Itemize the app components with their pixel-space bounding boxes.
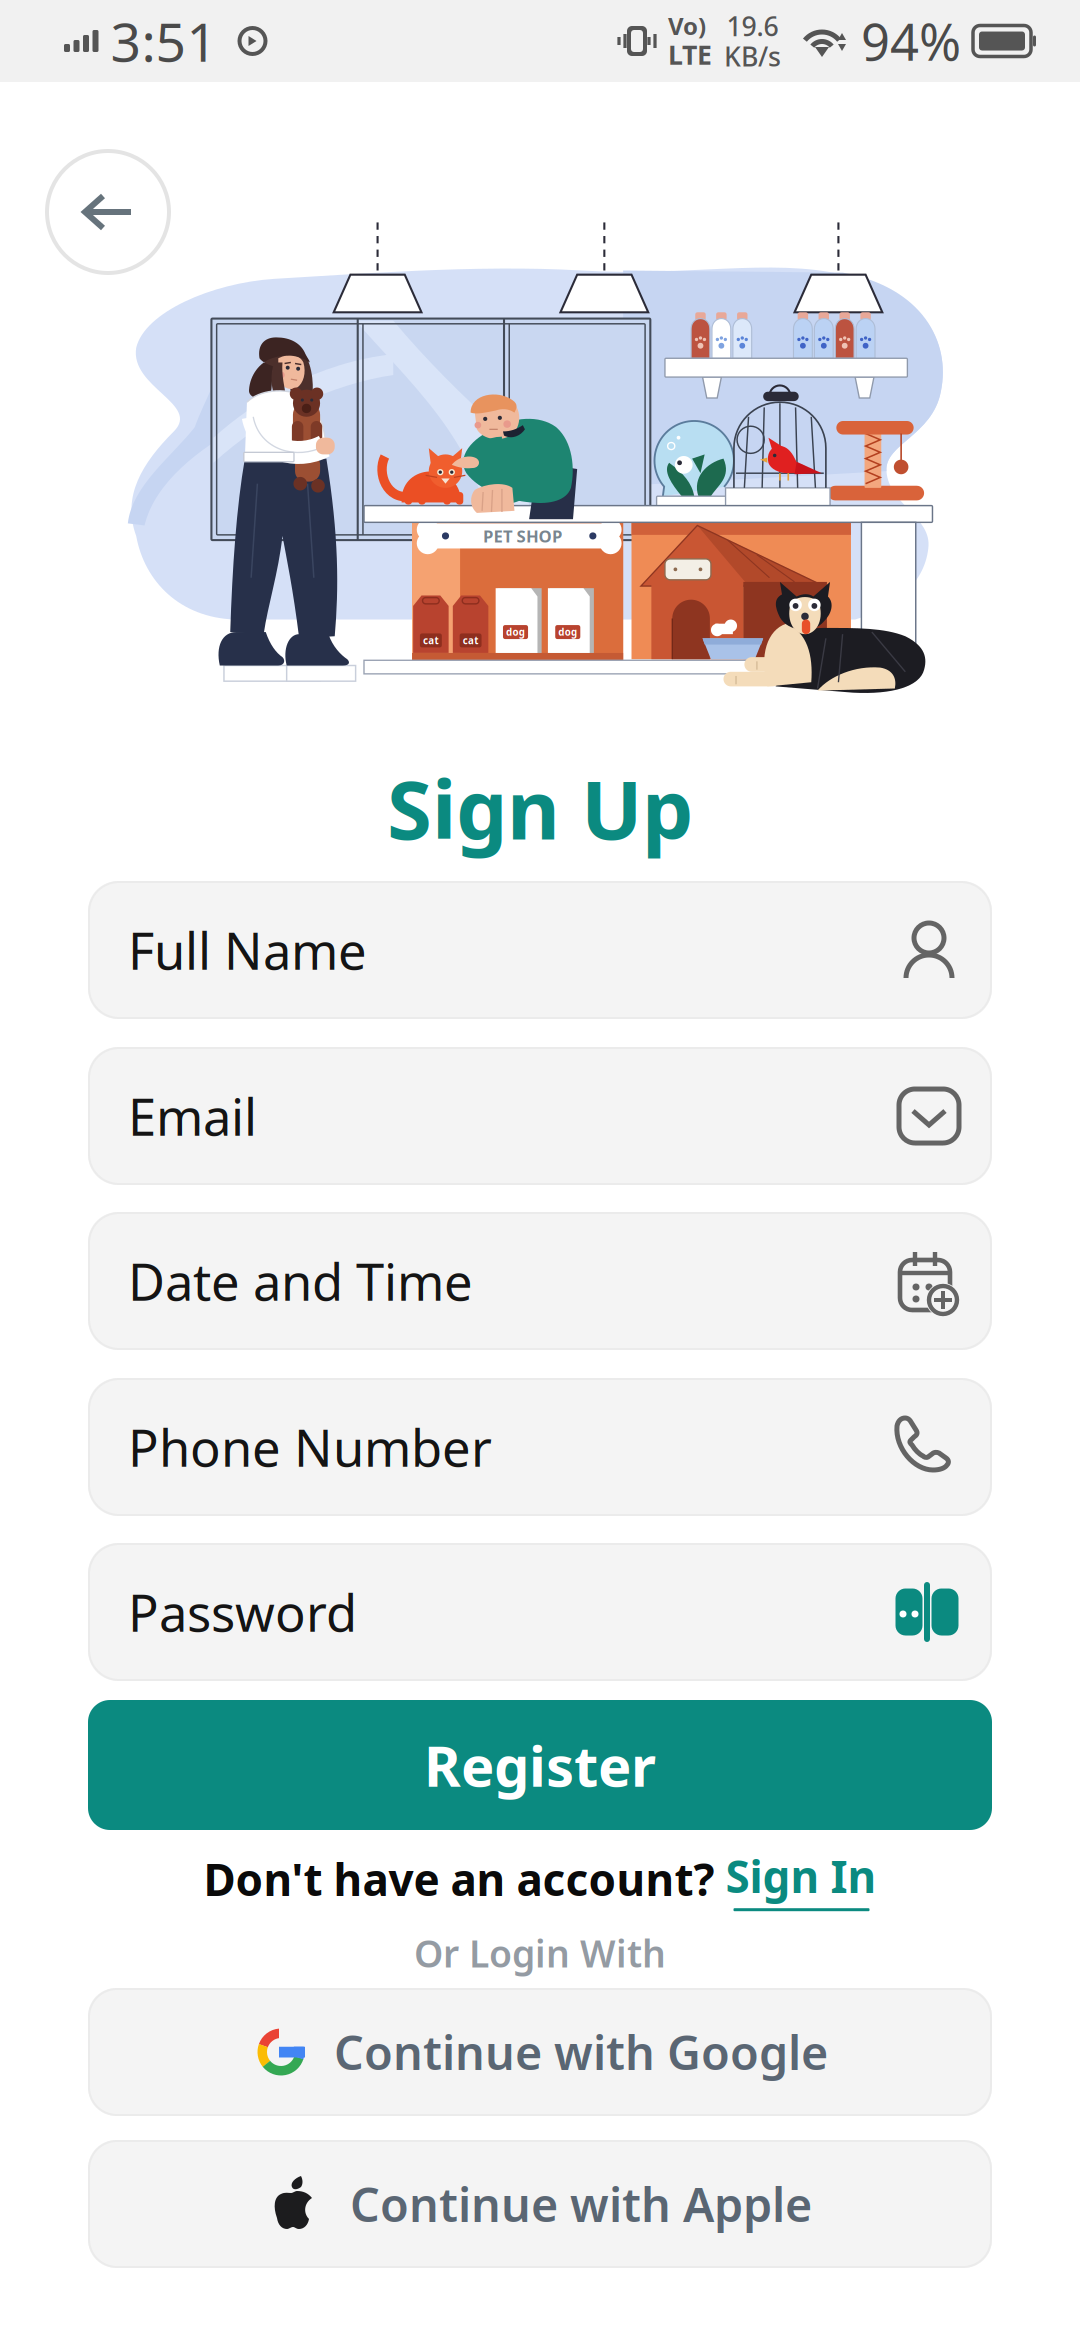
staticText: Don't have an account?	[203, 1850, 714, 1908]
button[interactable]: Back	[44, 148, 172, 276]
staticText: dog	[558, 619, 576, 631]
staticText: 94%	[861, 7, 961, 75]
button[interactable]: Phone Number	[88, 1378, 992, 1516]
staticText: 3:51	[110, 6, 217, 76]
button[interactable]: Email	[88, 1047, 992, 1185]
staticText: 19.6	[726, 8, 778, 43]
button[interactable]: Sign In	[714, 1847, 876, 1911]
button[interactable]: Continue with Apple	[88, 2140, 992, 2268]
staticText: Date and Time	[128, 1247, 473, 1315]
staticText: Continue with Google	[334, 2021, 828, 2083]
button[interactable]: Full Name	[88, 881, 992, 1019]
staticText: dog	[508, 619, 526, 631]
staticText: LTE	[668, 37, 712, 72]
staticText: Full Name	[128, 916, 367, 984]
staticText: Register	[424, 1728, 656, 1802]
button[interactable]: Continue with Google	[88, 1988, 992, 2116]
staticText: PET SHOP	[486, 522, 562, 544]
button[interactable]: Password	[88, 1543, 992, 1681]
staticText: Sign In	[714, 1847, 876, 1905]
button[interactable]: Date and Time	[88, 1212, 992, 1350]
staticText: Password	[128, 1578, 357, 1646]
button[interactable]: Register	[88, 1700, 992, 1830]
staticText: Continue with Apple	[350, 2173, 812, 2235]
staticText: cat	[428, 627, 443, 639]
staticText: KB/s	[724, 38, 781, 74]
staticText: Email	[128, 1082, 257, 1150]
staticText: Phone Number	[128, 1413, 492, 1481]
staticText: Vo)	[668, 10, 706, 42]
staticText: Or Login With	[414, 1928, 666, 1978]
staticText: cat	[466, 627, 481, 639]
staticText: Sign Up	[387, 754, 693, 862]
